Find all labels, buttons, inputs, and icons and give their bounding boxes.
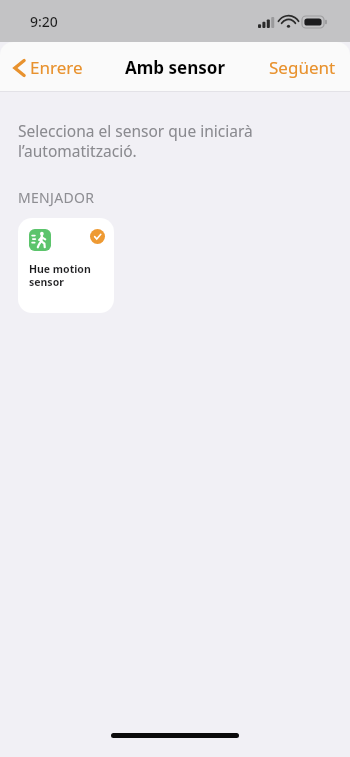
other: Selected: [90, 229, 105, 244]
other: Motion sensor: [29, 229, 51, 251]
staticText: 9:20: [30, 12, 58, 31]
button[interactable]: Següent: [265, 50, 340, 85]
button[interactable]: Motion sensor: [18, 218, 114, 313]
staticText: Hue motion sensor: [29, 262, 105, 289]
staticText: Amb sensor: [125, 56, 225, 79]
staticText: MENJADOR: [18, 188, 95, 207]
staticText: Següent: [269, 56, 336, 79]
staticText: Enrere: [30, 56, 83, 79]
button[interactable]: Enrere: [10, 50, 87, 85]
staticText: Selecciona el sensor que iniciarà l’auto…: [18, 120, 290, 162]
